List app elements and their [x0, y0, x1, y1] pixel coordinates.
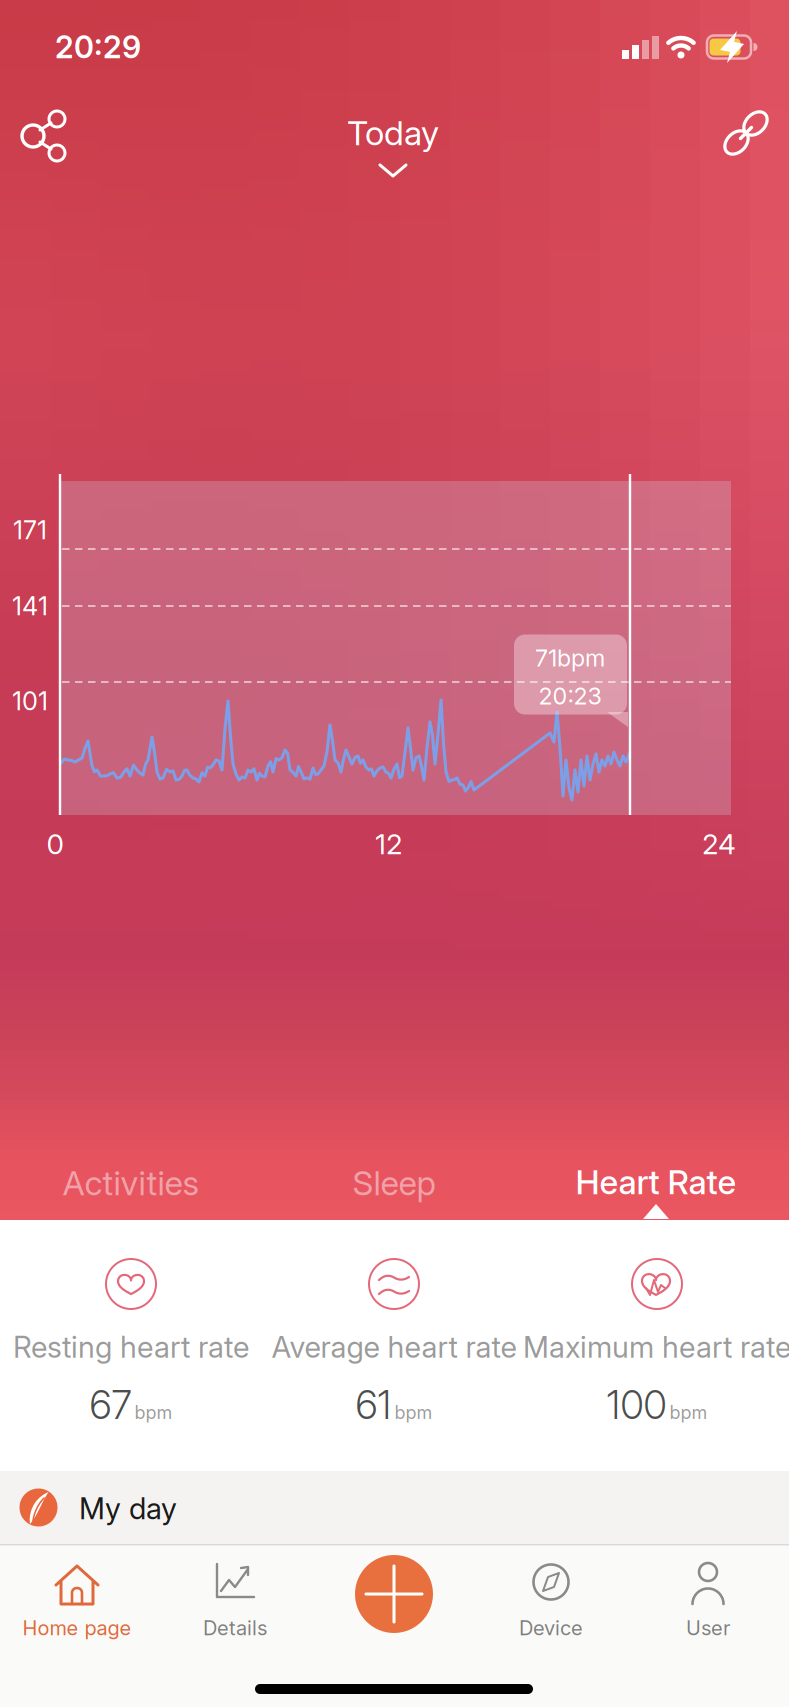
staticText: 61: [355, 1382, 391, 1428]
button[interactable]: Add: [355, 1555, 433, 1633]
staticText: bpm: [134, 1402, 172, 1423]
staticText: 12: [375, 827, 403, 861]
staticText: User: [686, 1616, 730, 1640]
staticText: Home page: [22, 1616, 131, 1640]
staticText: Maximum heart rate: [523, 1329, 789, 1365]
staticText: Activities: [62, 1163, 199, 1203]
button[interactable]: Share: [15, 106, 75, 166]
staticText: 171: [13, 515, 47, 545]
staticText: 71bpm: [535, 644, 605, 672]
button[interactable]: Details: [165, 1537, 305, 1657]
button[interactable]: Device: [481, 1537, 621, 1657]
staticText: Details: [203, 1616, 267, 1640]
staticText: Device: [519, 1616, 583, 1640]
staticText: 0: [46, 827, 63, 861]
button[interactable]: Today: [293, 105, 493, 189]
staticText: Today: [347, 112, 439, 153]
button[interactable]: Heart Rate: [541, 1147, 771, 1217]
staticText: 20:29: [55, 28, 141, 65]
staticText: 20:23: [538, 682, 601, 710]
button[interactable]: Home page: [2, 1537, 152, 1657]
staticText: 141: [12, 591, 48, 621]
staticText: bpm: [669, 1402, 707, 1423]
staticText: My day: [79, 1491, 177, 1526]
staticText: Sleep: [352, 1163, 435, 1203]
staticText: 67: [89, 1382, 131, 1428]
button[interactable]: My day: [0, 1471, 789, 1544]
staticText: Average heart rate: [271, 1329, 516, 1365]
button[interactable]: Sleep: [314, 1148, 474, 1218]
button[interactable]: Activities: [21, 1148, 241, 1218]
button[interactable]: Connect: [722, 109, 769, 156]
staticText: bpm: [394, 1402, 432, 1423]
staticText: 24: [702, 827, 736, 861]
staticText: 101: [12, 686, 48, 716]
staticText: Resting heart rate: [13, 1329, 249, 1365]
button[interactable]: User: [648, 1537, 768, 1657]
staticText: Heart Rate: [575, 1162, 736, 1202]
staticText: 100: [606, 1382, 666, 1428]
